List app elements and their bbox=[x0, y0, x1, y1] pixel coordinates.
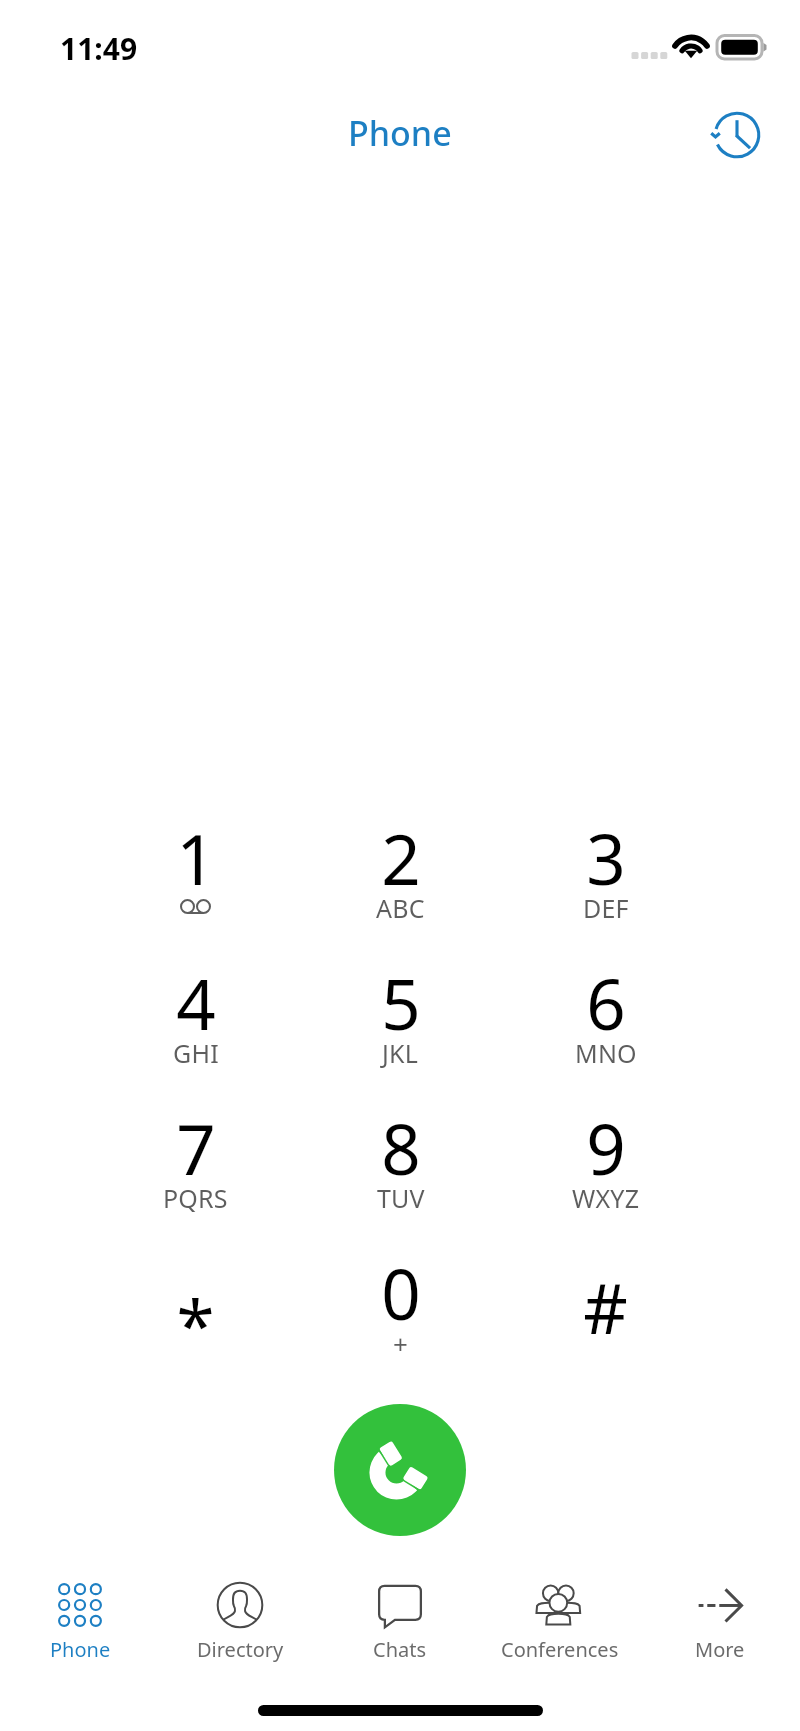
staticText: MNO bbox=[575, 1036, 637, 1070]
staticText: 9 bbox=[586, 1101, 626, 1195]
button[interactable]: Directory bbox=[160, 1568, 320, 1668]
staticText: 3 bbox=[586, 811, 626, 905]
staticText: JKL bbox=[382, 1036, 419, 1070]
button[interactable]: 3 bbox=[503, 808, 708, 953]
button[interactable]: Chats bbox=[320, 1568, 480, 1668]
staticText: More bbox=[695, 1636, 745, 1663]
staticText: TUV bbox=[377, 1181, 425, 1215]
staticText: Chats bbox=[373, 1636, 427, 1663]
staticText: ABC bbox=[376, 891, 425, 925]
button[interactable]: 8 bbox=[298, 1098, 503, 1243]
staticText: 11:49 bbox=[60, 28, 138, 69]
button[interactable]: * bbox=[93, 1243, 298, 1388]
staticText: Conferences bbox=[501, 1636, 619, 1663]
staticText: 4 bbox=[176, 956, 216, 1050]
staticText: 7 bbox=[176, 1101, 216, 1195]
button[interactable]: 7 bbox=[93, 1098, 298, 1243]
staticText: Directory bbox=[197, 1636, 284, 1663]
staticText: Phone bbox=[348, 110, 452, 156]
staticText: WXYZ bbox=[572, 1181, 640, 1215]
staticText: + bbox=[393, 1326, 409, 1361]
staticText: GHI bbox=[173, 1036, 219, 1070]
button[interactable]: Phone bbox=[0, 1568, 160, 1668]
button[interactable]: # bbox=[503, 1243, 708, 1388]
button[interactable]: Recent calls bbox=[704, 101, 772, 169]
button[interactable]: 4 bbox=[93, 953, 298, 1098]
staticText: 8 bbox=[381, 1101, 421, 1195]
staticText: Phone bbox=[50, 1636, 111, 1663]
button[interactable]: 5 bbox=[298, 953, 503, 1098]
button[interactable]: Conferences bbox=[480, 1568, 640, 1668]
button[interactable]: Call bbox=[334, 1404, 466, 1536]
button[interactable]: 2 bbox=[298, 808, 503, 953]
staticText: 5 bbox=[381, 956, 421, 1050]
staticText: # bbox=[583, 1260, 628, 1354]
button[interactable]: 9 bbox=[503, 1098, 708, 1243]
button[interactable]: 0 bbox=[298, 1243, 503, 1388]
button[interactable]: 6 bbox=[503, 953, 708, 1098]
staticText: PQRS bbox=[163, 1181, 228, 1215]
staticText: 2 bbox=[381, 811, 421, 905]
staticText: 6 bbox=[586, 956, 626, 1050]
staticText: DEF bbox=[583, 891, 629, 925]
staticText: * bbox=[176, 1277, 215, 1371]
staticText: 1 bbox=[176, 811, 216, 905]
button[interactable]: 1 bbox=[93, 808, 298, 953]
button[interactable]: More bbox=[640, 1568, 800, 1668]
staticText: 0 bbox=[381, 1246, 421, 1340]
